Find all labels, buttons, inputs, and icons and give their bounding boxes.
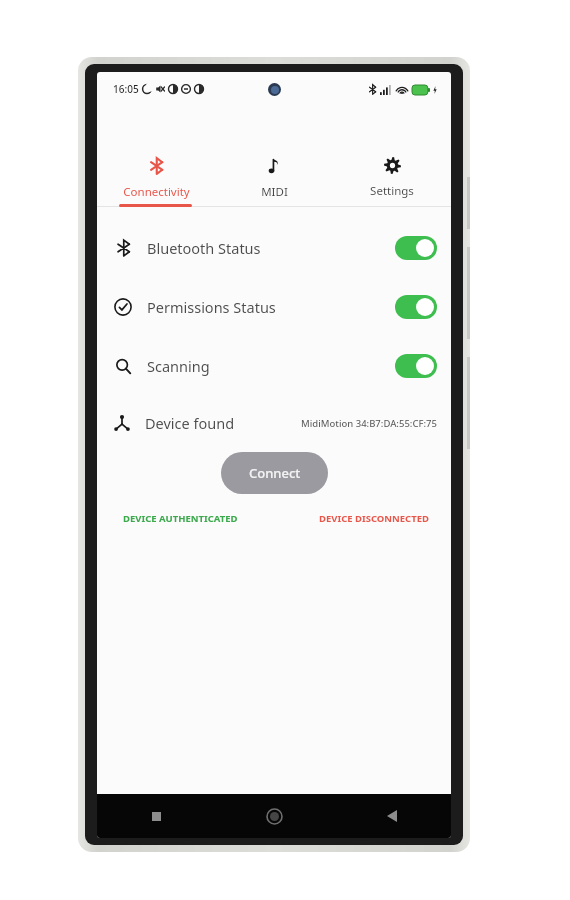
- button[interactable]: Toggle: [395, 295, 437, 319]
- staticText: 16:05: [113, 82, 139, 96]
- button[interactable]: Bluetooth Status: [97, 231, 451, 265]
- staticText: Bluetooth Status: [147, 238, 261, 258]
- button[interactable]: Connectivity: [97, 148, 215, 204]
- staticText: MIDI: [261, 184, 288, 200]
- button[interactable]: Settings: [333, 148, 451, 204]
- button[interactable]: Connect: [221, 452, 328, 494]
- button[interactable]: MIDI: [215, 148, 333, 204]
- button[interactable]: Scanning: [97, 349, 451, 383]
- staticText: MidiMotion 34:B7:DA:55:CF:75: [301, 417, 437, 430]
- button[interactable]: Back: [333, 794, 451, 838]
- staticText: Connect: [249, 464, 301, 482]
- button[interactable]: Permissions Status: [97, 290, 451, 324]
- button[interactable]: Device found: [97, 408, 451, 438]
- button[interactable]: Toggle: [395, 354, 437, 378]
- staticText: Device found: [145, 413, 235, 433]
- button[interactable]: Home: [215, 794, 333, 838]
- button[interactable]: Recents: [97, 794, 215, 838]
- staticText: DEVICE AUTHENTICATED: [123, 512, 238, 525]
- staticText: Connectivity: [123, 184, 190, 200]
- button[interactable]: Toggle: [395, 236, 437, 260]
- staticText: Settings: [370, 183, 414, 199]
- staticText: DEVICE DISCONNECTED: [319, 512, 429, 525]
- staticText: Scanning: [147, 356, 210, 376]
- staticText: Permissions Status: [147, 297, 276, 317]
